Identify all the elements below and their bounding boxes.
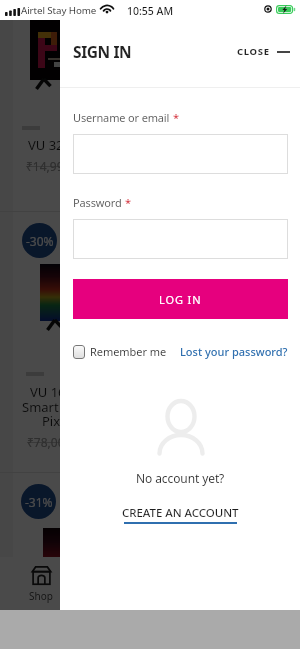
staticText: Airtel Stay Home — [21, 4, 97, 17]
staticText: Password — [73, 195, 122, 210]
button[interactable]: Remember me — [73, 344, 167, 359]
staticText: CLOSE — [237, 45, 270, 58]
staticText: VU 32" — [28, 136, 69, 154]
staticText: LOG IN — [159, 292, 202, 307]
staticText: Remember me — [90, 344, 167, 359]
button[interactable]: Shop — [20, 566, 62, 603]
staticText: ₹78,000 — [27, 434, 72, 450]
button[interactable]: CREATE AN ACCOUNT — [122, 505, 239, 524]
staticText: -30% — [26, 233, 54, 249]
button[interactable] — [73, 219, 288, 259]
button[interactable]: LOG IN — [73, 279, 288, 319]
staticText: -31% — [25, 494, 53, 510]
staticText: No account yet? — [136, 470, 225, 486]
staticText: Pixelight LED — [42, 412, 122, 430]
button[interactable] — [73, 134, 288, 174]
staticText: VU 163 cm — [30, 383, 95, 401]
staticText: Username or email — [73, 110, 170, 125]
staticText: Smart 4K UHD — [22, 398, 110, 416]
staticText: * — [125, 195, 132, 210]
staticText: Shop — [29, 589, 53, 603]
staticText: CREATE AN ACCOUNT — [122, 505, 239, 521]
button[interactable]: Close — [227, 37, 300, 66]
button[interactable]: Lost your password? — [180, 344, 288, 359]
staticText: 10:55 AM — [127, 4, 174, 18]
staticText: ₹14,999 — [26, 158, 71, 174]
staticText: SIGN IN — [73, 41, 132, 62]
staticText: * — [173, 110, 180, 125]
